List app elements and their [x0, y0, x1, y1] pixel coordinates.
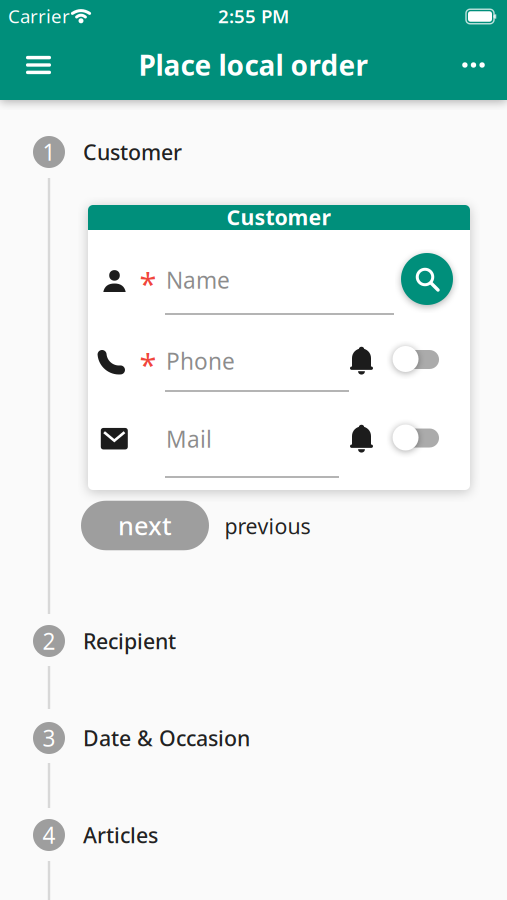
- staticText: Date & Occasion: [83, 724, 250, 752]
- staticText: Phone: [166, 346, 235, 376]
- button[interactable]: next: [0, 0, 507, 900]
- button[interactable]: 4: [33, 819, 158, 851]
- button[interactable]: Search customer: [0, 0, 507, 900]
- staticText: Customer: [226, 203, 331, 231]
- staticText: Recipient: [83, 627, 176, 655]
- staticText: Customer: [83, 138, 182, 166]
- button[interactable]: Mail notification: [392, 424, 439, 450]
- button[interactable]: 2: [33, 625, 176, 657]
- staticText: previous: [224, 512, 310, 540]
- staticText: *: [139, 344, 156, 384]
- staticText: Place local order: [138, 46, 368, 84]
- staticText: 3: [42, 723, 55, 753]
- staticText: 2: [42, 626, 55, 656]
- button[interactable]: previous: [0, 0, 507, 900]
- staticText: next: [118, 509, 172, 542]
- button[interactable]: Phone notification: [392, 346, 439, 372]
- button[interactable]: More options: [0, 0, 507, 900]
- staticText: 2:55 PM: [218, 4, 289, 28]
- staticText: 1: [42, 137, 55, 167]
- staticText: Mail: [166, 424, 212, 454]
- button[interactable]: 3: [33, 722, 250, 754]
- staticText: *: [139, 263, 156, 303]
- staticText: 4: [42, 820, 55, 850]
- staticText: Articles: [83, 821, 158, 849]
- button[interactable]: Menu: [0, 0, 507, 900]
- button[interactable]: 1: [33, 136, 182, 168]
- staticText: Carrier: [8, 4, 70, 28]
- staticText: Name: [166, 265, 230, 295]
